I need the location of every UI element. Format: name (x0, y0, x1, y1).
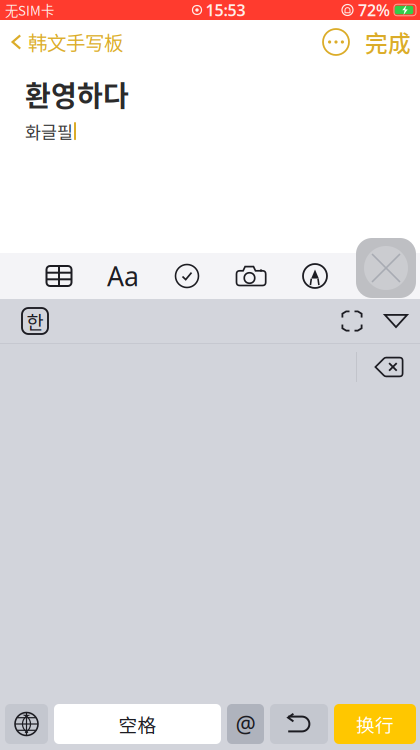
button[interactable]: More (316, 20, 356, 64)
button[interactable]: Checklist (155, 253, 219, 299)
button[interactable]: Hide keyboard (374, 301, 418, 341)
button[interactable]: Camera (219, 253, 283, 299)
staticText: 72% (358, 0, 390, 21)
button[interactable]: Undo (270, 704, 328, 744)
button[interactable]: Scan text (330, 301, 374, 341)
staticText: 韩文手写板 (28, 28, 123, 56)
button[interactable]: 完成 (356, 20, 420, 64)
staticText: 환영하다 (25, 74, 129, 114)
staticText: 完成 (365, 26, 411, 58)
button[interactable]: 换行 (334, 704, 416, 744)
staticText: 화글필 (25, 118, 73, 144)
button[interactable]: Aa (91, 253, 155, 299)
staticText: 한 (26, 307, 43, 334)
staticText: Aa (107, 258, 139, 294)
button[interactable]: @ (227, 704, 264, 744)
staticText: 15:53 (205, 0, 245, 21)
staticText: 空格 (118, 710, 156, 737)
button[interactable]: 韩文手写板 (0, 20, 123, 64)
button[interactable]: Markup (283, 253, 347, 299)
staticText: 无SIM卡 (5, 0, 54, 20)
staticText: 换行 (356, 710, 394, 737)
button[interactable]: 空格 (54, 704, 221, 744)
button[interactable]: Switch keyboard (5, 704, 48, 744)
staticText: @ (235, 709, 255, 739)
button[interactable]: Table (27, 253, 91, 299)
button[interactable]: 한 (22, 308, 48, 334)
button[interactable]: Delete (370, 352, 408, 382)
button[interactable]: Hide keyboard (356, 238, 416, 298)
